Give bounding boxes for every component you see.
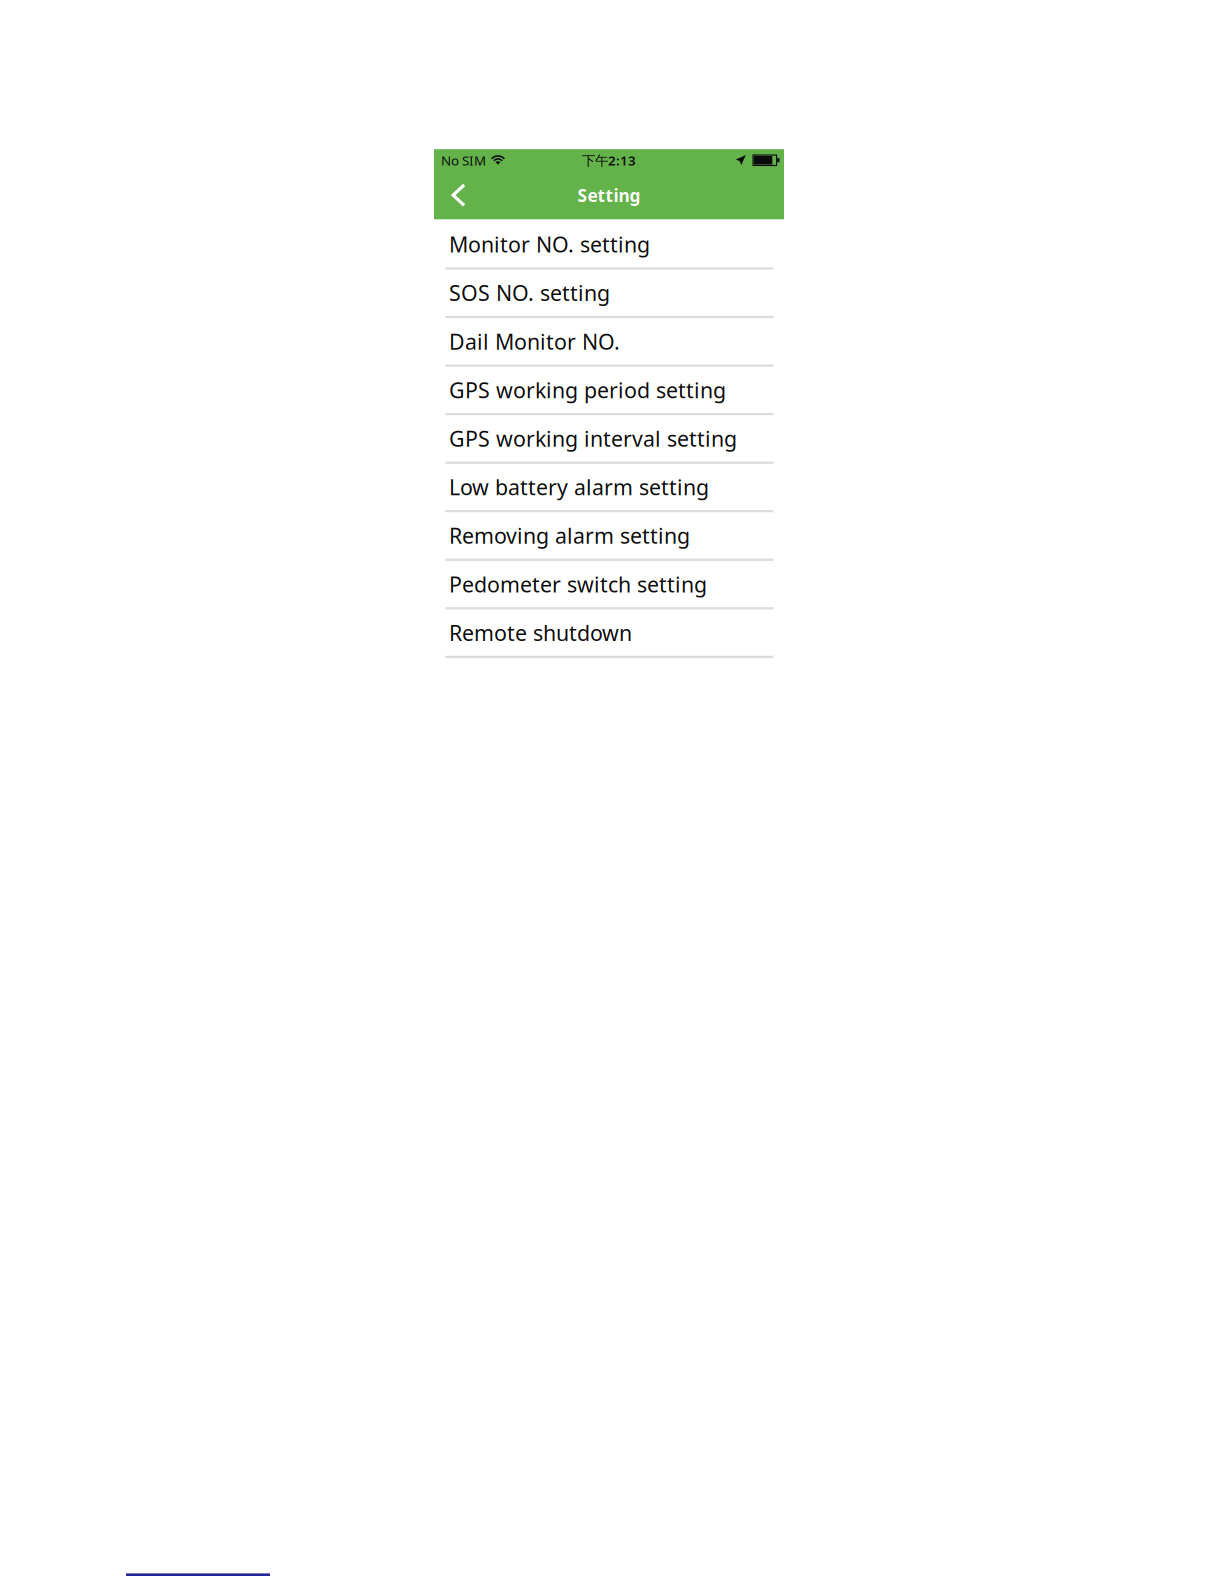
staticText: GPS working interval setting (449, 424, 737, 453)
staticText: 下午2:13 (582, 151, 636, 169)
button[interactable]: Pedometer switch setting (434, 561, 784, 609)
button[interactable]: SOS NO. setting (434, 270, 784, 318)
button[interactable]: Back (434, 171, 486, 219)
staticText: Dail Monitor NO. (449, 327, 620, 355)
button[interactable]: Monitor NO. setting (434, 221, 784, 270)
button[interactable]: Dail Monitor NO. (434, 318, 784, 367)
button[interactable]: Removing alarm setting (434, 512, 784, 561)
staticText: Low battery alarm setting (449, 473, 709, 501)
staticText: SOS NO. setting (449, 279, 610, 307)
button[interactable]: GPS working interval setting (434, 415, 784, 464)
button[interactable]: GPS working period setting (434, 367, 784, 415)
staticText: No SIM (441, 151, 486, 169)
staticText: Monitor NO. setting (449, 230, 650, 258)
staticText: Setting (577, 184, 640, 207)
staticText: Pedometer switch setting (449, 570, 707, 598)
staticText: GPS working period setting (449, 376, 726, 404)
button[interactable]: Low battery alarm setting (434, 464, 784, 512)
staticText: Removing alarm setting (449, 521, 690, 550)
staticText: Remote shutdown (449, 618, 632, 647)
button[interactable]: Remote shutdown (434, 610, 784, 658)
